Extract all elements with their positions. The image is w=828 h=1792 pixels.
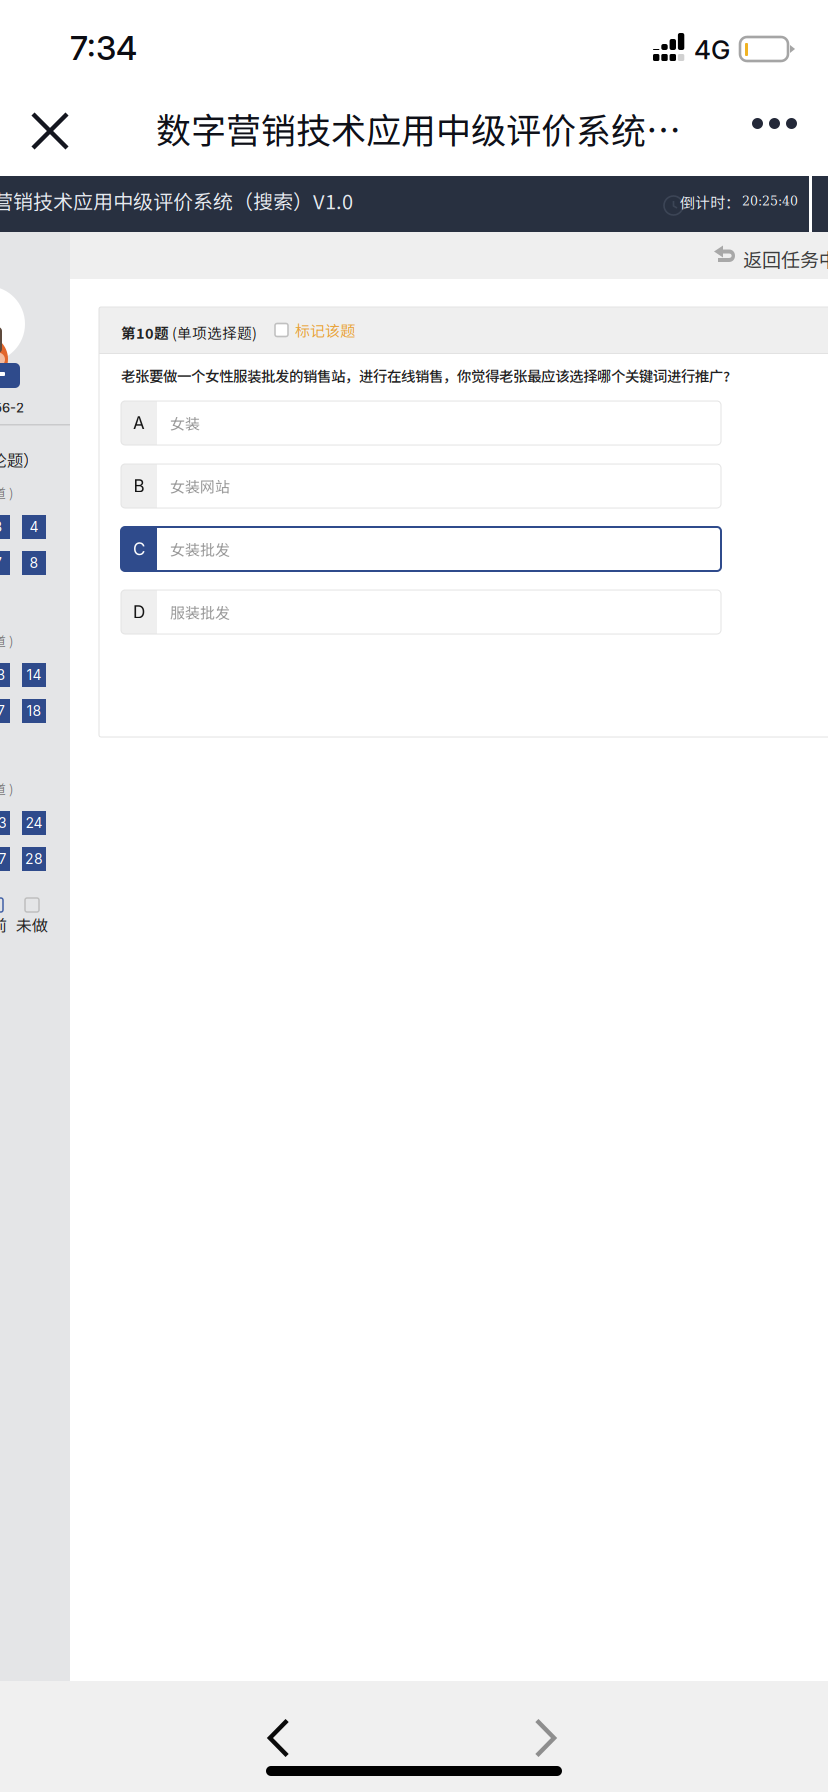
staticText: 前	[0, 913, 7, 936]
button[interactable]: 标记该题	[271, 307, 359, 353]
staticText: 服装批发	[170, 601, 230, 623]
staticText: 8	[29, 554, 38, 571]
staticText: 7	[0, 554, 2, 571]
staticText: 20:25:40	[742, 194, 798, 209]
staticText: 道 )	[0, 779, 13, 798]
staticText: 道 )	[0, 483, 13, 502]
staticText: 3	[0, 518, 2, 535]
staticText: 13	[0, 666, 5, 683]
staticText: 14	[26, 666, 41, 683]
staticText: 标记该题	[295, 319, 355, 341]
staticText: 老张要做一个女性服装批发的销售站，进行在线销售，你觉得老张最应该选择哪个关键词进…	[121, 365, 730, 386]
staticText: 女装	[170, 412, 200, 434]
button[interactable]: 返回任务中心	[714, 232, 828, 279]
staticText: 女装网站	[170, 475, 230, 497]
staticText: 营销技术应用中级评价系统（搜索）V1.0	[0, 186, 353, 215]
button[interactable]: B	[121, 464, 721, 508]
button[interactable]: Back	[242, 1702, 314, 1774]
staticText: 论题）	[0, 448, 39, 471]
staticText: 056-2	[0, 400, 24, 416]
staticText: 倒计时：	[680, 191, 740, 213]
staticText: 4	[29, 518, 38, 535]
staticText: 4G	[694, 34, 730, 65]
staticText: C	[133, 539, 145, 559]
staticText: D	[133, 602, 145, 622]
button[interactable]: Close	[0, 92, 100, 176]
staticText: 7:34	[70, 28, 137, 68]
button[interactable]: D	[121, 590, 721, 634]
staticText: 28	[25, 850, 43, 867]
staticText: 数字营销技术应用中级评价系统…	[156, 103, 681, 154]
staticText: B	[133, 476, 144, 496]
staticText: A	[133, 413, 145, 433]
staticText: 27	[0, 850, 6, 867]
staticText: 23	[0, 814, 7, 831]
staticText: 返回任务中心	[743, 245, 828, 272]
staticText: 女装批发	[170, 538, 230, 560]
button[interactable]: A	[121, 401, 721, 445]
button[interactable]: C	[121, 527, 721, 571]
staticText: 未做	[16, 913, 48, 936]
staticText: 道 )	[0, 631, 13, 650]
staticText: 第10题	[121, 322, 169, 343]
staticText: 17	[0, 702, 5, 719]
staticText: 24	[25, 814, 42, 831]
staticText: (单项选择题)	[169, 322, 257, 343]
staticText: 18	[26, 702, 41, 719]
button[interactable]: Forward	[510, 1702, 582, 1774]
button[interactable]: More options	[720, 92, 828, 176]
